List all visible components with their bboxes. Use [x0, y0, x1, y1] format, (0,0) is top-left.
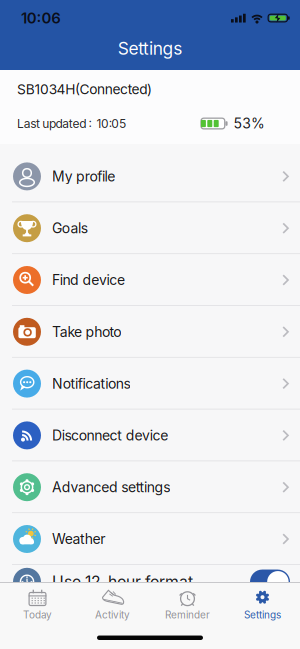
- button[interactable]: Take photo: [0, 306, 300, 358]
- button[interactable]: Find device: [0, 254, 300, 306]
- staticText: Today: [23, 609, 52, 621]
- button[interactable]: Settings: [225, 589, 300, 621]
- staticText: Disconnect device: [52, 427, 168, 444]
- staticText: 53%: [233, 115, 265, 132]
- button[interactable]: Weather: [0, 513, 300, 565]
- staticText: My profile: [52, 168, 115, 185]
- staticText: Notifications: [52, 375, 130, 392]
- staticText: Reminder: [165, 609, 210, 621]
- button[interactable]: Activity: [75, 589, 150, 621]
- staticText: Advanced settings: [52, 479, 170, 496]
- button[interactable]: My profile: [0, 150, 300, 202]
- staticText: Settings: [118, 38, 182, 59]
- staticText: SB1034H(Connected): [17, 81, 152, 98]
- staticText: Weather: [52, 530, 105, 547]
- staticText: Find device: [52, 271, 125, 288]
- staticText: Activity: [95, 609, 130, 621]
- staticText: Last updated : 10:05: [17, 116, 126, 131]
- staticText: 10:06: [21, 9, 61, 27]
- button[interactable]: Notifications: [0, 358, 300, 409]
- staticText: Settings: [244, 609, 281, 621]
- button[interactable]: Goals: [0, 202, 300, 254]
- staticText: Take photo: [52, 323, 121, 340]
- staticText: Use 12-hour format: [52, 572, 193, 591]
- button[interactable]: Advanced settings: [0, 461, 300, 513]
- button[interactable]: Today: [0, 589, 75, 621]
- staticText: Goals: [52, 220, 88, 237]
- button[interactable]: Use 12-hour format: [0, 556, 300, 608]
- button[interactable]: Reminder: [150, 589, 225, 621]
- button[interactable]: Disconnect device: [0, 409, 300, 461]
